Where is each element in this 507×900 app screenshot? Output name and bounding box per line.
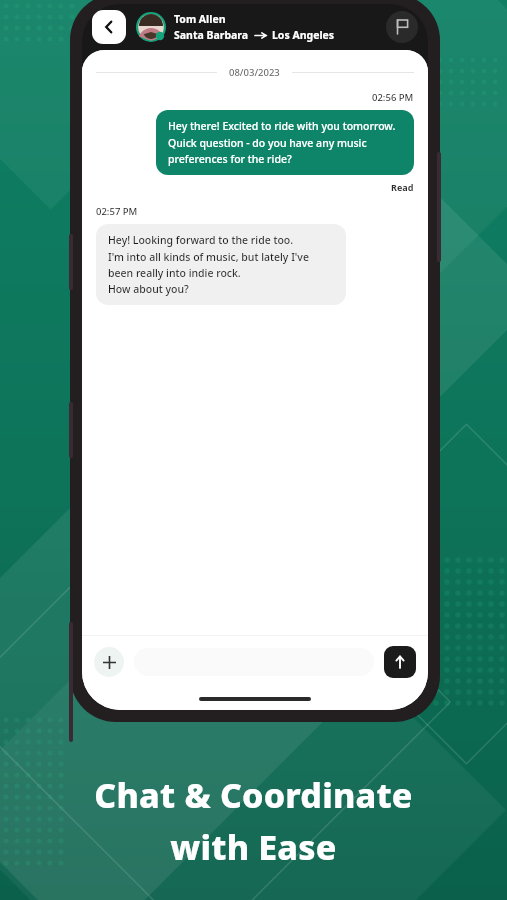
staticText: 02:56 PM [372, 91, 414, 104]
staticText: Read [391, 181, 414, 193]
button[interactable]: Back [92, 10, 126, 44]
button[interactable]: Send [384, 646, 416, 678]
button[interactable]: Hey! Looking forward to the ride too. I'… [96, 224, 346, 305]
button[interactable]: Attach [94, 647, 124, 677]
staticText: 02:57 PM [96, 205, 138, 218]
staticText: Santa Barbara [174, 28, 249, 42]
staticText: Hey there! Excited to ride with you tomo… [168, 119, 402, 166]
button[interactable]: Report [386, 11, 418, 43]
staticText: Hey! Looking forward to the ride too. I'… [108, 233, 334, 296]
staticText: with Ease [170, 824, 337, 870]
button[interactable]: Hey there! Excited to ride with you tomo… [156, 110, 414, 175]
staticText: Los Angeles [272, 28, 335, 42]
staticText: Chat & Coordinate [94, 772, 413, 818]
staticText: Tom Allen [174, 12, 226, 26]
staticText: 08/03/2023 [229, 66, 280, 79]
